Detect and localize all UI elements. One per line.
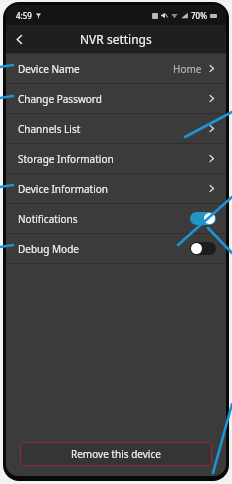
button[interactable]: Storage Information <box>6 144 226 173</box>
staticText: Device Name <box>18 62 80 76</box>
staticText: Home <box>173 62 202 76</box>
staticText: Notifications <box>18 212 78 226</box>
button[interactable]: Debug Mode off <box>190 242 216 255</box>
staticText: NVR settings <box>80 31 152 47</box>
staticText: Debug Mode <box>18 242 79 256</box>
staticText: 70% <box>191 10 207 21</box>
button[interactable]: Channels List <box>6 114 226 143</box>
button[interactable]: Back <box>6 26 32 52</box>
staticText: Device Information <box>18 182 109 196</box>
button[interactable]: Remove this device <box>20 442 212 466</box>
button[interactable]: Notifications <box>6 204 226 233</box>
staticText: 4:59 <box>16 10 32 21</box>
staticText: Change Password <box>18 92 102 106</box>
button[interactable]: Notifications on <box>190 212 216 225</box>
staticText: Channels List <box>18 122 81 136</box>
button[interactable]: Device Information <box>6 174 226 203</box>
button[interactable]: Device Name <box>6 54 226 83</box>
button[interactable]: Change Password <box>6 84 226 113</box>
staticText: Remove this device <box>71 447 161 461</box>
staticText: Storage Information <box>18 152 114 166</box>
button[interactable]: Debug Mode <box>6 234 226 263</box>
